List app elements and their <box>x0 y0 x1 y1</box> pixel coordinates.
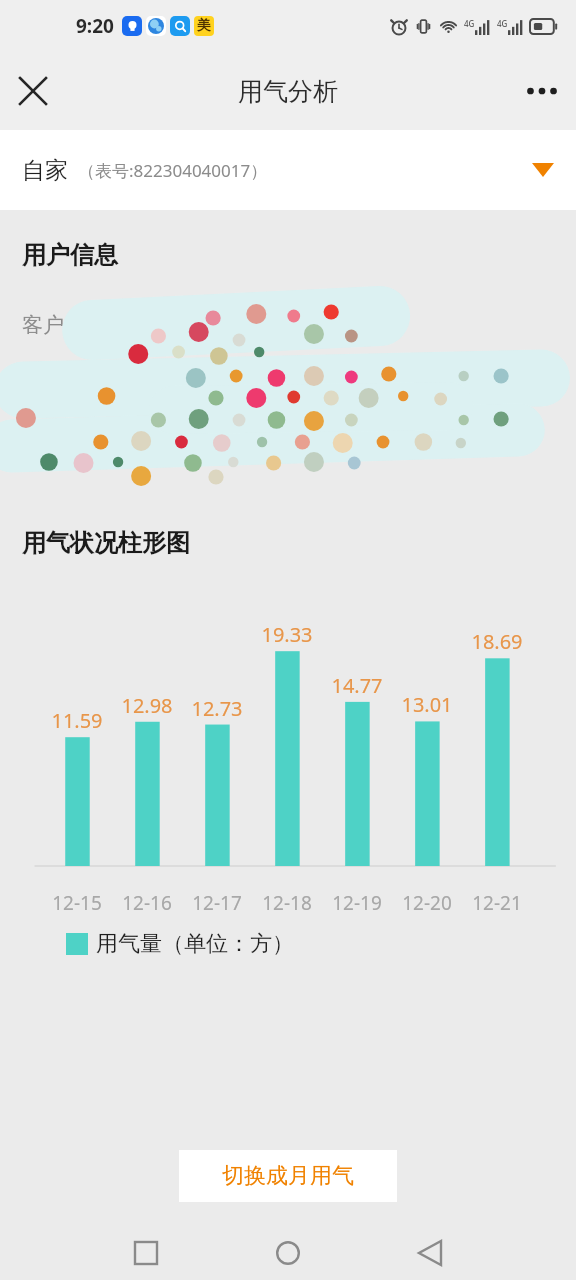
staticText: 用户信息 <box>22 240 118 270</box>
staticText: 12-16 <box>109 890 185 916</box>
staticText: 12-20 <box>389 890 465 916</box>
staticText: 18.69 <box>461 628 533 655</box>
staticText: 用气量（单位：方） <box>96 930 294 958</box>
staticText: 切换成月用气 <box>222 1162 354 1190</box>
staticText: 13.01 <box>391 691 463 718</box>
staticText: 燃气表读数 <box>22 444 127 470</box>
staticText: 12-21 <box>459 890 535 916</box>
staticText: 客户名称 <box>22 312 106 338</box>
staticText: 11.59 <box>41 707 113 734</box>
staticText: 14.77 <box>321 672 393 699</box>
button[interactable]: Home <box>265 1230 311 1276</box>
staticText: 4G <box>497 18 508 29</box>
staticText: 客户地址 <box>22 378 106 404</box>
staticText: 19.33 <box>251 621 323 648</box>
button[interactable]: Recent apps <box>123 1230 169 1276</box>
staticText: 12.73 <box>181 695 253 722</box>
staticText: 用气分析 <box>238 76 338 107</box>
staticText: （表号:822304040017） <box>78 159 268 182</box>
button[interactable]: 自家 <box>0 130 576 210</box>
staticText: 自家 <box>22 156 68 185</box>
staticText: 美 <box>197 17 211 35</box>
button[interactable]: Back <box>407 1230 453 1276</box>
staticText: 12-19 <box>319 890 395 916</box>
staticText: 12-18 <box>249 890 325 916</box>
staticText: 12-17 <box>179 890 255 916</box>
button[interactable]: More options <box>516 65 568 117</box>
button[interactable]: Close <box>8 66 58 116</box>
staticText: 9:20 <box>76 13 114 39</box>
staticText: 12.98 <box>111 692 183 719</box>
staticText: 4G <box>464 18 475 29</box>
button[interactable]: 切换成月用气 <box>179 1150 397 1202</box>
staticText: 12-15 <box>39 890 115 916</box>
staticText: 用气状况柱形图 <box>22 528 190 558</box>
